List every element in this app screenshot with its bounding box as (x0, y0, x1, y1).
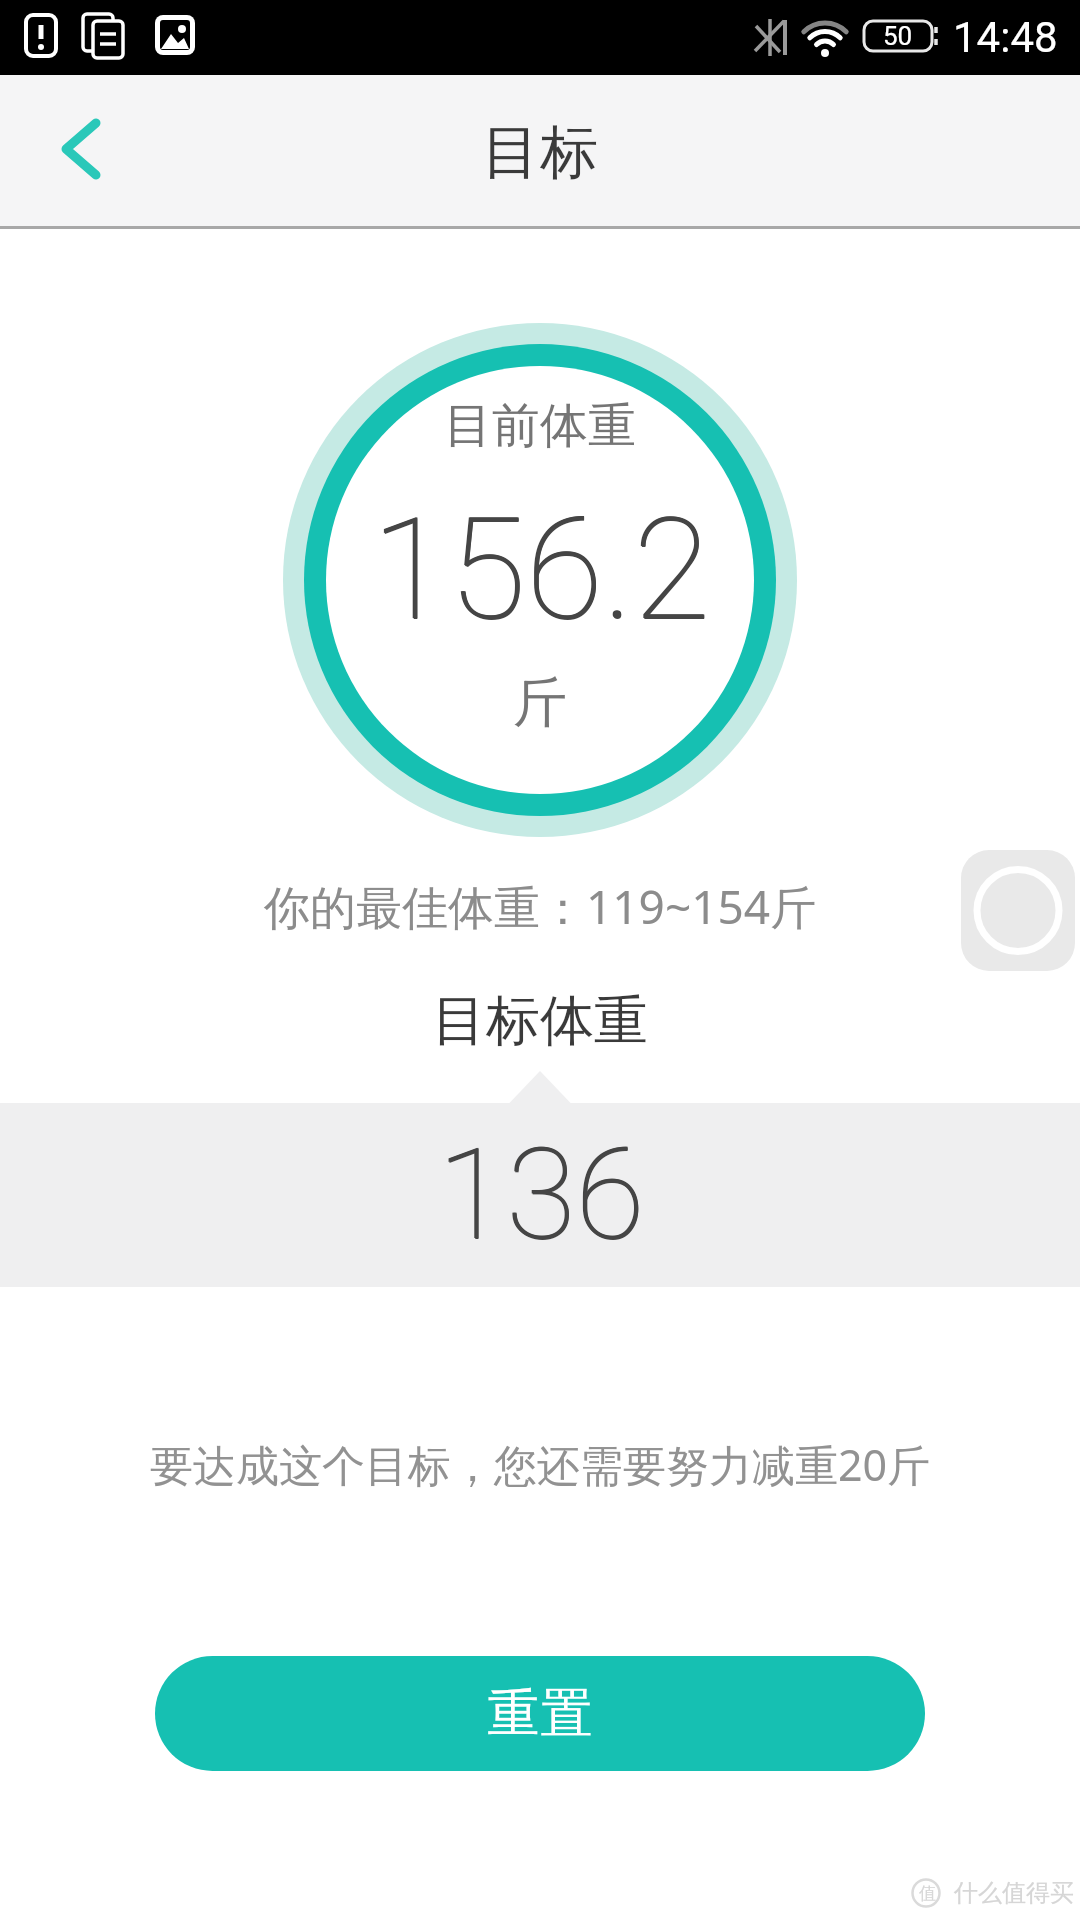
staticText: 目标体重 (432, 987, 648, 1055)
button[interactable]: 重置 (155, 1656, 925, 1771)
staticText: 14:48 (953, 13, 1058, 62)
staticText: 136 (437, 1121, 644, 1269)
button[interactable] (30, 105, 130, 200)
staticText: 136 (438, 1122, 645, 1270)
button[interactable] (961, 850, 1075, 971)
staticText: 156.2 (371, 487, 710, 652)
staticText: 什么值得买 (954, 1878, 1074, 1908)
staticText: 你的最佳体重：119~154斤 (264, 875, 817, 938)
staticText: 斤 (513, 669, 567, 737)
button[interactable] (0, 1103, 1080, 1287)
staticText: 重置 (487, 1681, 593, 1747)
staticText: 136 (438, 1121, 645, 1269)
staticText: 要达成这个目标，您还需要努力减重20斤 (150, 1435, 931, 1494)
staticText: 值 (919, 1883, 936, 1904)
staticText: 156.2 (372, 487, 711, 652)
staticText: 50 (883, 21, 913, 51)
staticText: 156.2 (372, 488, 711, 653)
staticText: 目标 (482, 116, 598, 189)
staticText: 目前体重 (444, 396, 636, 456)
